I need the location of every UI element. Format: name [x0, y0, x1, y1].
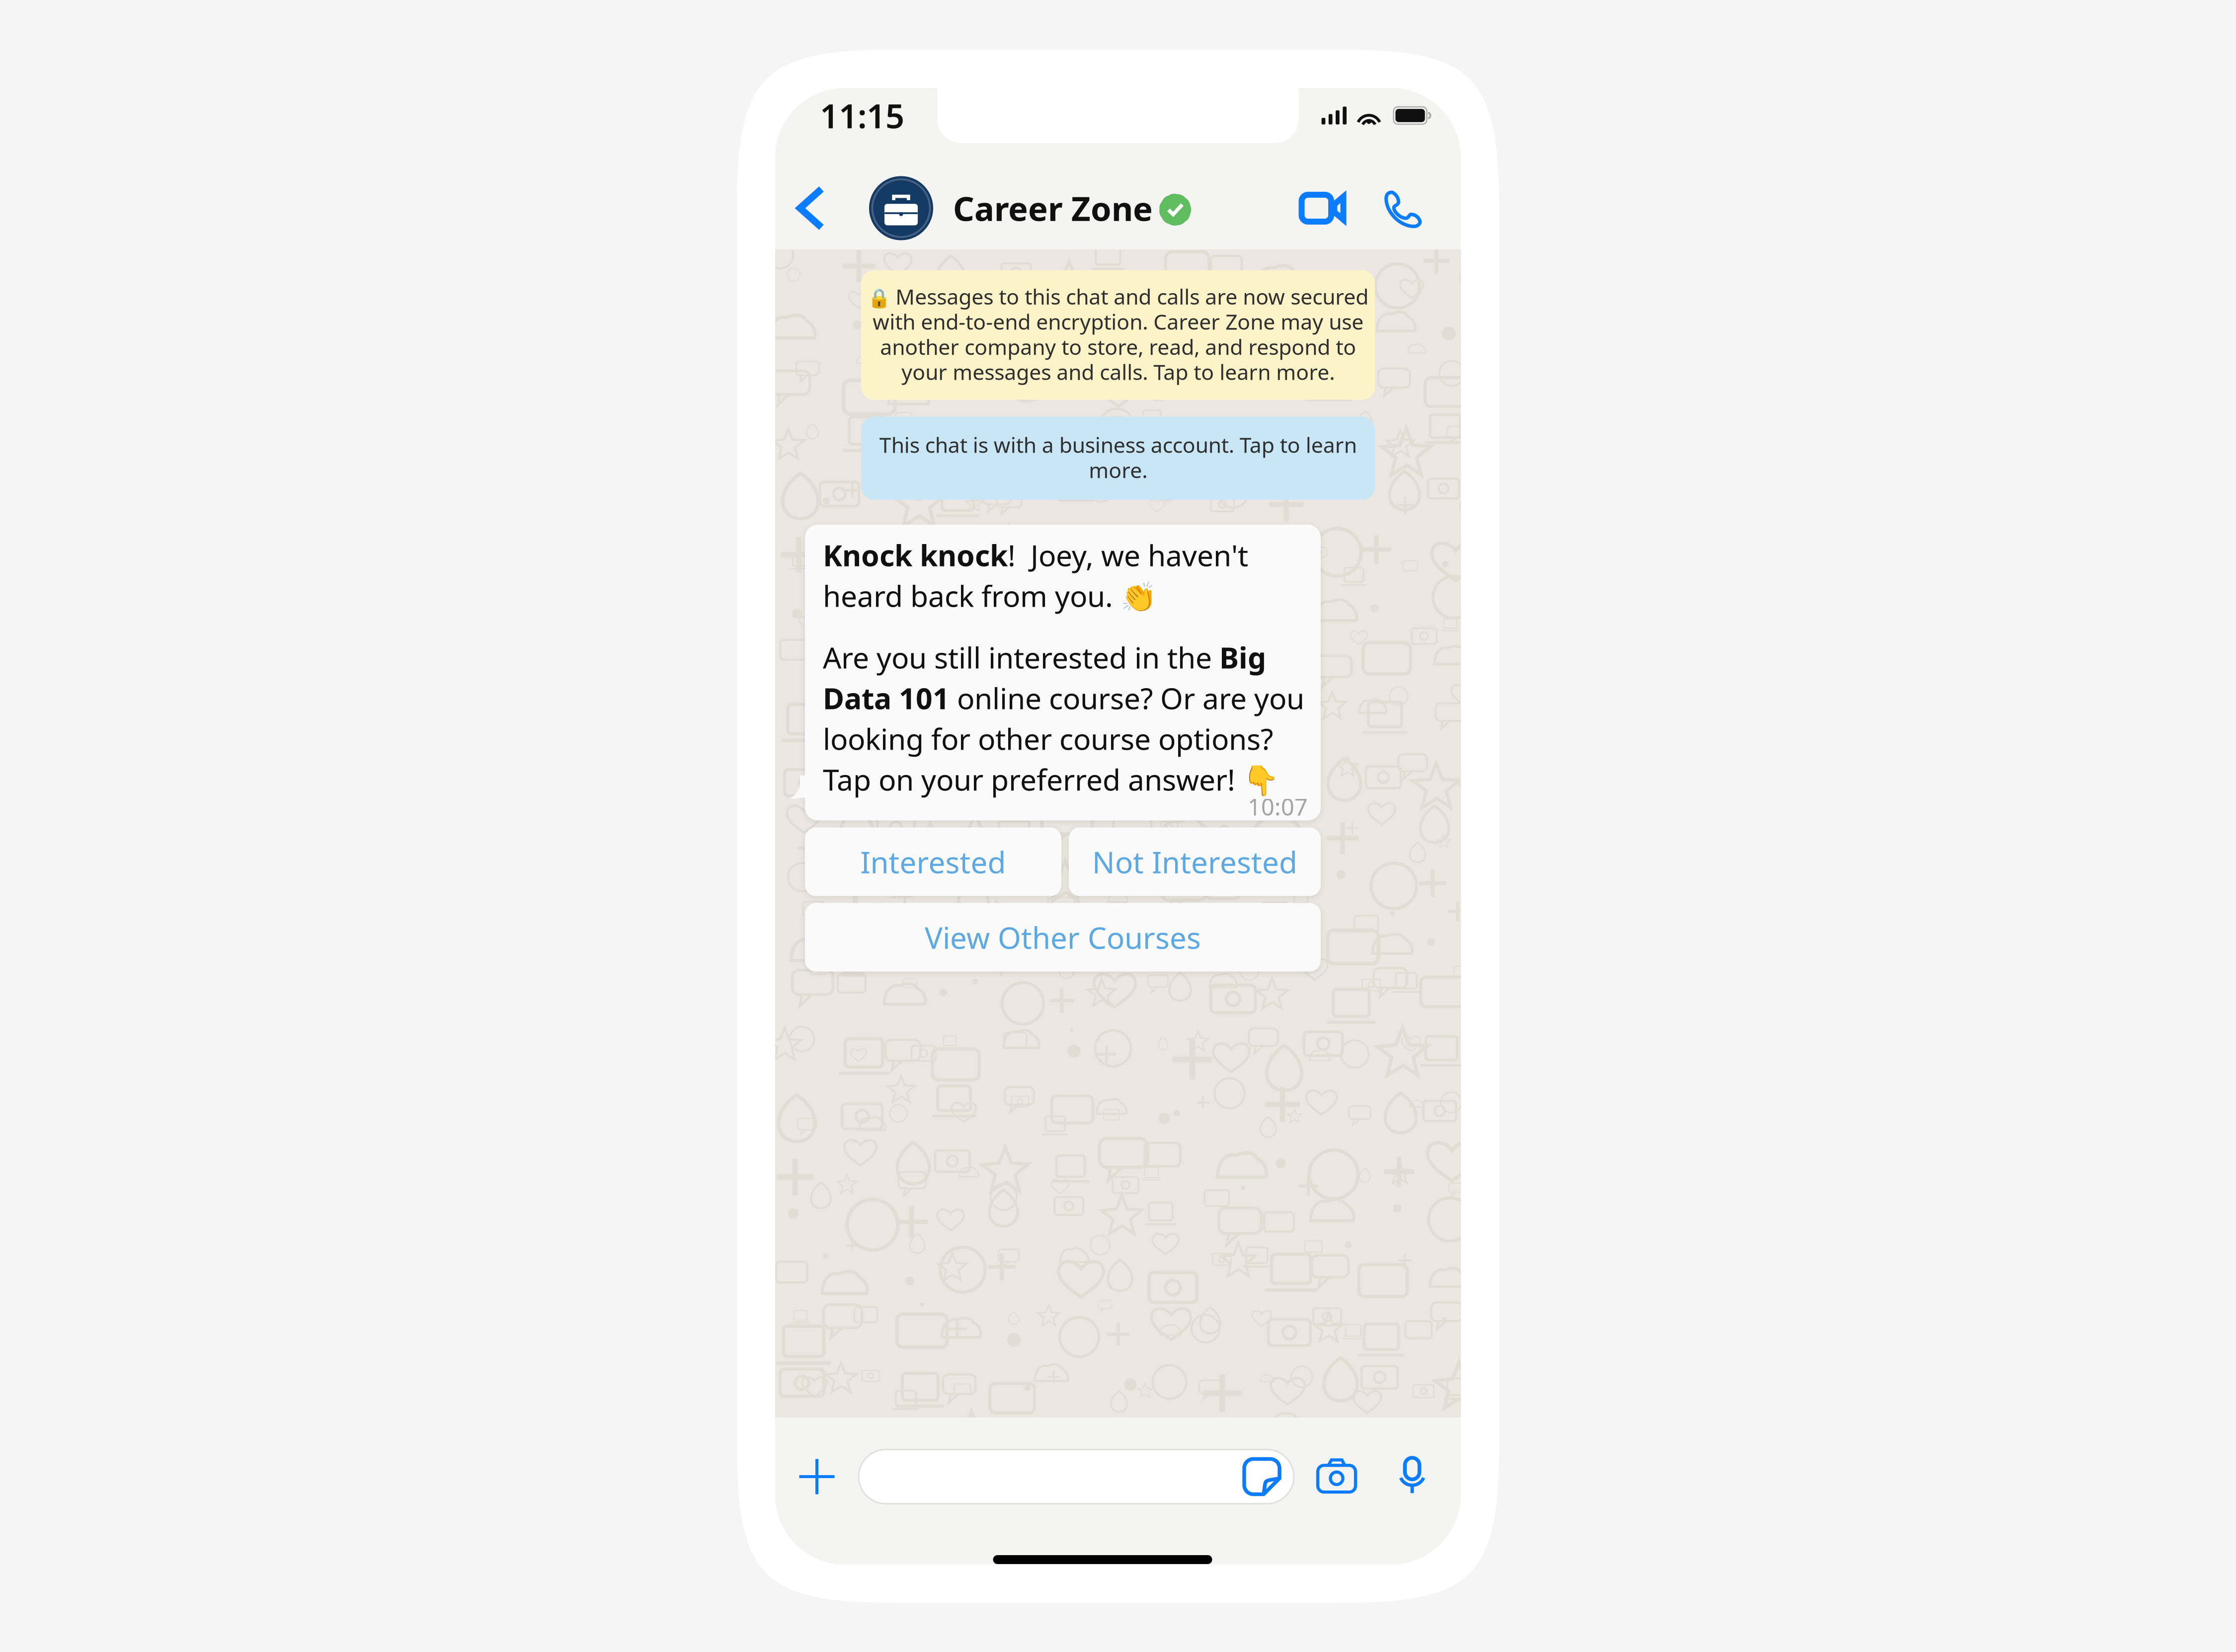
staticText: This chat is with a business account. Ta… [879, 431, 1357, 484]
staticText: 🔒 Messages to this chat and calls are no… [868, 282, 1368, 386]
button[interactable]: Stickers [1230, 1450, 1294, 1504]
staticText: Interested [860, 842, 1006, 882]
button[interactable]: Camera [1294, 1438, 1379, 1515]
button[interactable]: Career Zone [836, 155, 1191, 261]
staticText: Are you still interested in the Big Data… [823, 638, 1304, 799]
button[interactable]: Interested [805, 827, 1061, 896]
staticText: Career Zone [953, 186, 1153, 230]
button[interactable]: View Other Courses [805, 903, 1321, 972]
button[interactable]: Back [786, 155, 836, 261]
staticText: View Other Courses [925, 917, 1201, 957]
staticText: 10:07 [1248, 791, 1308, 822]
button[interactable]: Voice message [1379, 1438, 1445, 1515]
button[interactable]: Voice call [1373, 155, 1433, 261]
button[interactable]: Not Interested [1069, 827, 1321, 896]
button[interactable]: Video call [1272, 155, 1373, 261]
staticText: Not Interested [1092, 842, 1297, 882]
button[interactable]: 🔒 Messages to this chat and calls are no… [861, 270, 1375, 400]
staticText: 11:15 [820, 94, 904, 137]
button[interactable]: Attach [775, 1438, 859, 1515]
staticText: Knock knock! Joey, we haven't heard back… [823, 536, 1248, 615]
button[interactable]: This chat is with a business account. Ta… [861, 417, 1375, 500]
